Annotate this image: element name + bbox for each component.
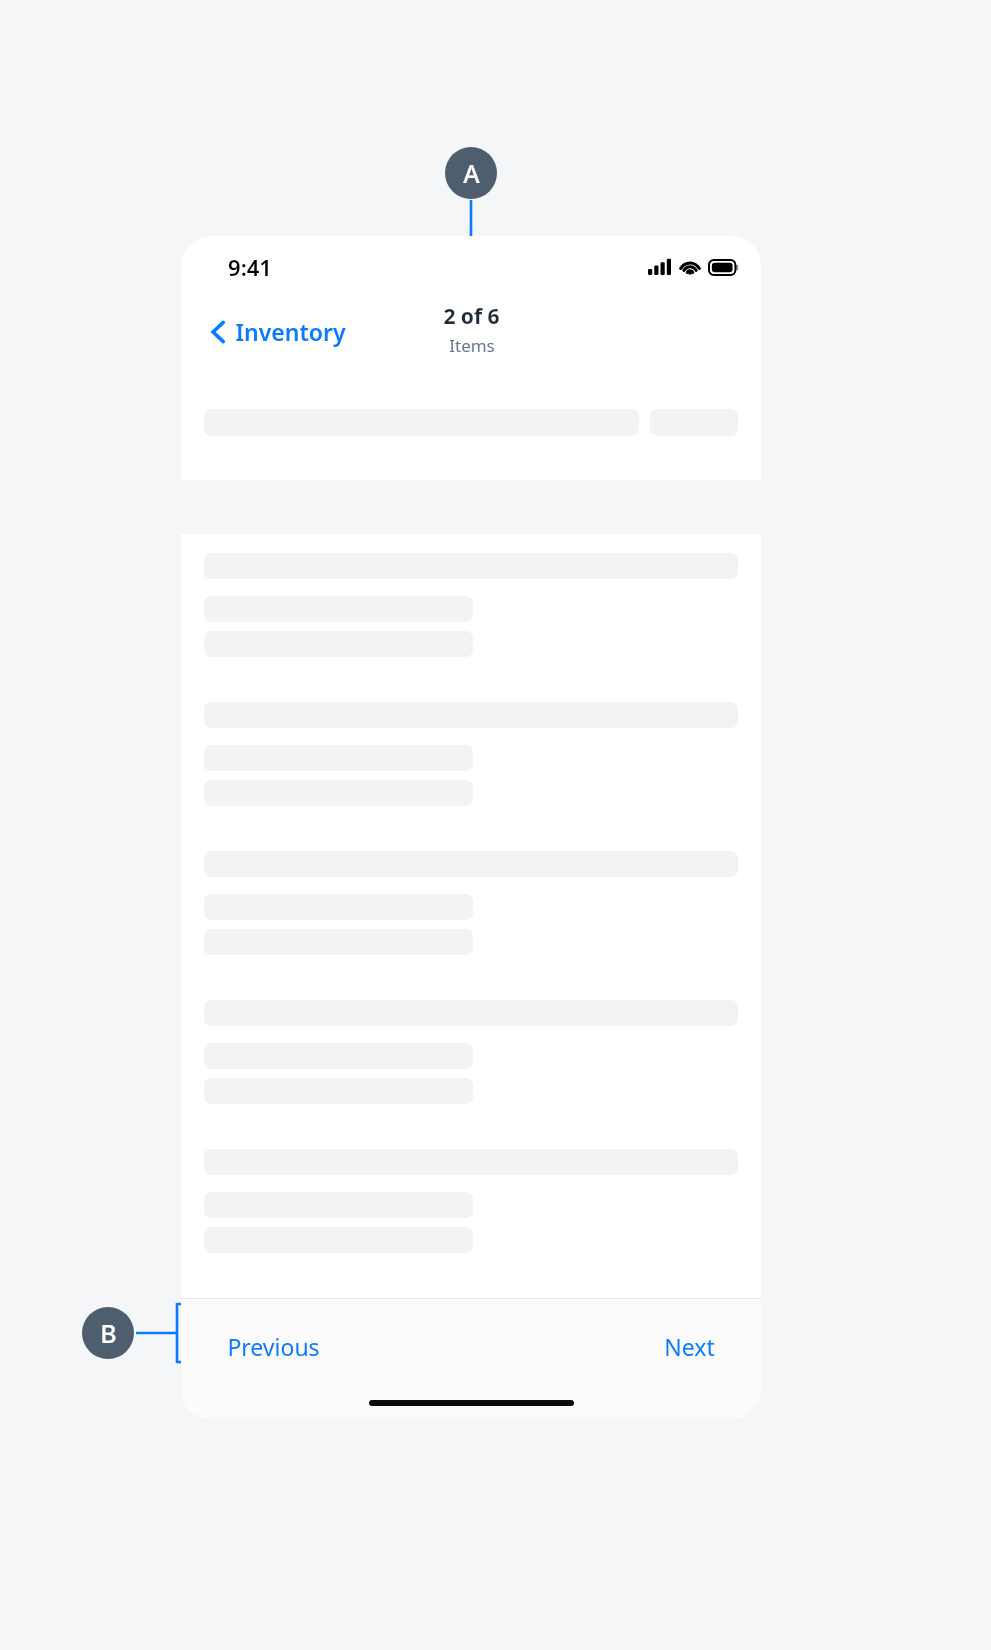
staticText: Items (449, 334, 495, 357)
button[interactable]: Inventory item (181, 702, 761, 851)
staticText: Previous (227, 1331, 320, 1362)
button[interactable]: Inventory item (181, 553, 761, 702)
button[interactable]: Next (648, 1321, 731, 1372)
staticText: Next (664, 1331, 715, 1362)
button[interactable]: Inventory item (181, 1000, 761, 1149)
button[interactable]: Inventory item (181, 851, 761, 1000)
staticText: 2 of 6 (443, 302, 500, 331)
button[interactable]: Previous (211, 1321, 336, 1372)
button[interactable]: Inventory item (181, 1149, 761, 1298)
staticText: 9:41 (228, 252, 272, 282)
staticText: Inventory (235, 316, 346, 347)
staticText: B (100, 1316, 117, 1350)
button[interactable]: Inventory (207, 312, 350, 351)
staticText: A (463, 156, 480, 190)
